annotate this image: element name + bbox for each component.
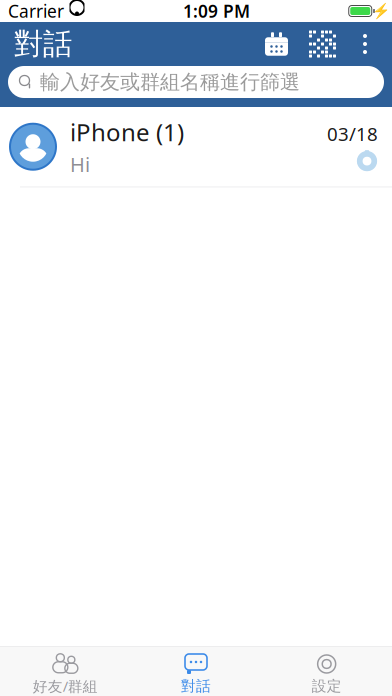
button[interactable]: 好友/群組 (0, 647, 131, 696)
staticText: Hi (70, 151, 90, 177)
staticText: 設定 (312, 677, 342, 695)
button[interactable]: Scan QR code (299, 24, 346, 64)
staticText: 好友/群組 (33, 676, 98, 696)
staticText: Carrier (8, 0, 64, 22)
staticText: 輸入好友或群組名稱進行篩選 (40, 70, 300, 94)
button[interactable]: More options (346, 24, 378, 64)
staticText: ⚡ (371, 3, 389, 19)
staticText: 對話 (14, 26, 72, 62)
staticText: 對話 (181, 677, 211, 695)
button[interactable]: 設定 (261, 647, 392, 696)
staticText: 1:09 PM (183, 0, 250, 22)
button[interactable]: Calendar (254, 24, 299, 64)
button[interactable]: 對話 (131, 647, 261, 696)
staticText: iPhone (1) (70, 116, 184, 148)
staticText: 03/18 (327, 121, 378, 146)
